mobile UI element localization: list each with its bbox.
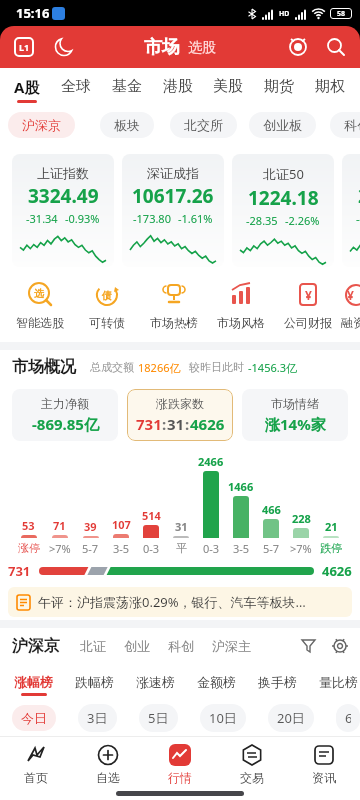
- button[interactable]: [326, 37, 346, 57]
- button[interactable]: [332, 638, 348, 654]
- staticText: 港股: [163, 77, 193, 96]
- staticText: 2205.54: [358, 183, 360, 209]
- staticText: 午评：沪指震荡涨0.29%，银行、汽车等板块…: [38, 593, 306, 611]
- staticText: 市场概况: [12, 357, 76, 377]
- button[interactable]: ¥: [341, 280, 360, 330]
- button[interactable]: 期货: [264, 71, 294, 102]
- staticText: 主力净额: [41, 396, 89, 411]
- staticText: 涨速榜: [136, 674, 175, 690]
- button[interactable]: 午评：沪指震荡涨0.29%，银行、汽车等板块…: [8, 587, 352, 617]
- staticText: -0.93%: [65, 211, 100, 226]
- button[interactable]: 上证指数: [12, 154, 114, 267]
- staticText: 板块: [114, 117, 140, 133]
- staticText: HD: [279, 9, 290, 19]
- button[interactable]: 金额榜: [197, 668, 236, 696]
- button[interactable]: 首页: [0, 742, 72, 785]
- button[interactable]: 沪深京: [8, 112, 75, 138]
- button[interactable]: 选: [6, 280, 73, 330]
- staticText: 可转债: [89, 315, 125, 330]
- button[interactable]: [301, 639, 316, 654]
- staticText: 39: [84, 519, 97, 534]
- button[interactable]: 换手榜: [258, 668, 297, 696]
- staticText: 10617.26: [132, 183, 214, 209]
- staticText: 5-7: [82, 541, 99, 556]
- staticText: 0-3: [143, 541, 160, 556]
- button[interactable]: 深证成指: [122, 154, 224, 267]
- button[interactable]: 量比榜: [319, 668, 358, 696]
- staticText: -2.26%: [285, 213, 320, 228]
- button[interactable]: 涨速榜: [136, 668, 175, 696]
- button[interactable]: 60日: [336, 704, 360, 732]
- staticText: 4626: [190, 414, 225, 434]
- button[interactable]: 主力净额: [12, 389, 118, 441]
- button[interactable]: 市场热榜: [140, 280, 207, 330]
- button[interactable]: 市场风格: [207, 280, 274, 330]
- button[interactable]: A股: [14, 71, 40, 103]
- button[interactable]: 交易: [216, 742, 288, 785]
- staticText: 交易: [240, 770, 264, 785]
- staticText: 北证: [80, 638, 106, 654]
- staticText: 选股: [188, 39, 216, 57]
- staticText: 首页: [24, 770, 48, 785]
- button[interactable]: 资讯: [288, 742, 360, 785]
- button[interactable]: [54, 37, 74, 57]
- button[interactable]: 创业板: [249, 112, 316, 138]
- button[interactable]: ¥: [274, 280, 341, 330]
- button[interactable]: 创业板指: [342, 154, 360, 267]
- staticText: 沪深京: [22, 117, 61, 133]
- button[interactable]: 20日: [268, 704, 314, 732]
- staticText: 1466: [228, 479, 254, 494]
- staticText: 1224.18: [248, 185, 319, 211]
- staticText: 深证成指: [147, 165, 199, 181]
- staticText: 15:16: [16, 4, 50, 22]
- staticText: 量比榜: [319, 674, 358, 690]
- button[interactable]: 5日: [139, 704, 178, 732]
- button[interactable]: 行情: [144, 742, 216, 785]
- button[interactable]: 涨幅榜: [14, 668, 53, 696]
- button[interactable]: 期权: [315, 71, 345, 102]
- staticText: 行情: [168, 770, 192, 785]
- button[interactable]: 北交所: [170, 112, 237, 138]
- button[interactable]: 板块: [100, 112, 154, 138]
- staticText: 71: [53, 518, 66, 533]
- button[interactable]: 基金: [112, 71, 142, 102]
- button[interactable]: 科创板: [330, 112, 360, 138]
- button[interactable]: L1: [14, 37, 34, 57]
- staticText: >7%: [49, 541, 71, 556]
- staticText: 3-5: [233, 541, 250, 556]
- button[interactable]: 港股: [163, 71, 193, 102]
- staticText: >7%: [290, 541, 312, 556]
- staticText: 总成交额: [90, 360, 134, 374]
- staticText: 21: [325, 519, 338, 534]
- staticText: 北交所: [184, 117, 223, 133]
- staticText: 美股: [213, 77, 243, 96]
- button[interactable]: 美股: [213, 71, 243, 102]
- button[interactable]: 债: [73, 280, 140, 330]
- button[interactable]: 北证50: [232, 154, 334, 267]
- staticText: 4626: [322, 562, 352, 580]
- staticText: 跌停: [320, 541, 342, 555]
- button[interactable]: 自选: [72, 742, 144, 785]
- button[interactable]: 市场情绪: [242, 389, 348, 441]
- staticText: ¥: [305, 287, 312, 303]
- button[interactable]: 10日: [200, 704, 246, 732]
- button[interactable]: 今日: [12, 705, 56, 731]
- staticText: 北证50: [263, 165, 304, 183]
- staticText: -44.48: [356, 211, 360, 226]
- button[interactable]: [288, 37, 308, 57]
- staticText: 5-7: [263, 541, 280, 556]
- staticText: -1.61%: [178, 211, 213, 226]
- button[interactable]: 全球: [61, 71, 91, 102]
- staticText: 731: [8, 562, 31, 580]
- staticText: -173.80: [133, 211, 171, 226]
- staticText: 金额榜: [197, 674, 236, 690]
- staticText: 基金: [112, 77, 142, 96]
- staticText: 市场情绪: [271, 396, 319, 411]
- staticText: 平: [176, 541, 187, 555]
- button[interactable]: 跌幅榜: [75, 668, 114, 696]
- button[interactable]: 涨跌家数: [127, 389, 233, 441]
- staticText: 58: [337, 9, 346, 19]
- button[interactable]: 3日: [78, 704, 117, 732]
- staticText: 市场风格: [217, 315, 265, 330]
- staticText: 今日: [21, 710, 47, 726]
